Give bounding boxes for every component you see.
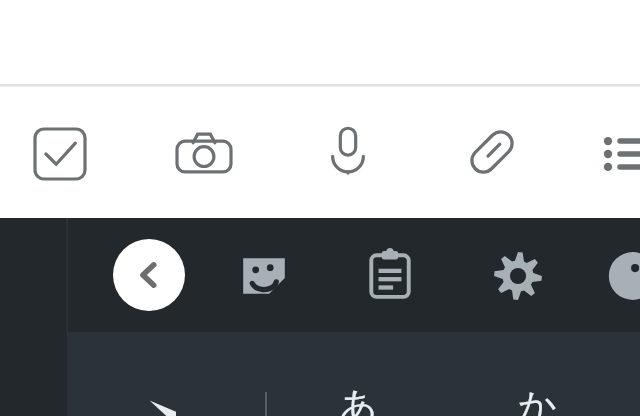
button[interactable]: Settings [492,250,544,302]
button[interactable]: Format list [600,126,640,182]
button[interactable]: か [497,382,577,416]
button[interactable]: Emoji [614,250,640,302]
button[interactable]: Stickers [238,250,290,302]
staticText: か [518,382,557,416]
button[interactable]: Camera [172,122,236,186]
staticText: あ [339,382,378,416]
button[interactable]: Move cursor left [128,386,188,416]
button[interactable]: あ [318,382,398,416]
button[interactable]: Checklist [28,122,92,186]
button[interactable]: Clipboard [364,248,416,300]
button[interactable]: Back [113,239,185,311]
button[interactable]: Attach file [460,120,524,184]
button[interactable]: Voice input [316,118,380,182]
